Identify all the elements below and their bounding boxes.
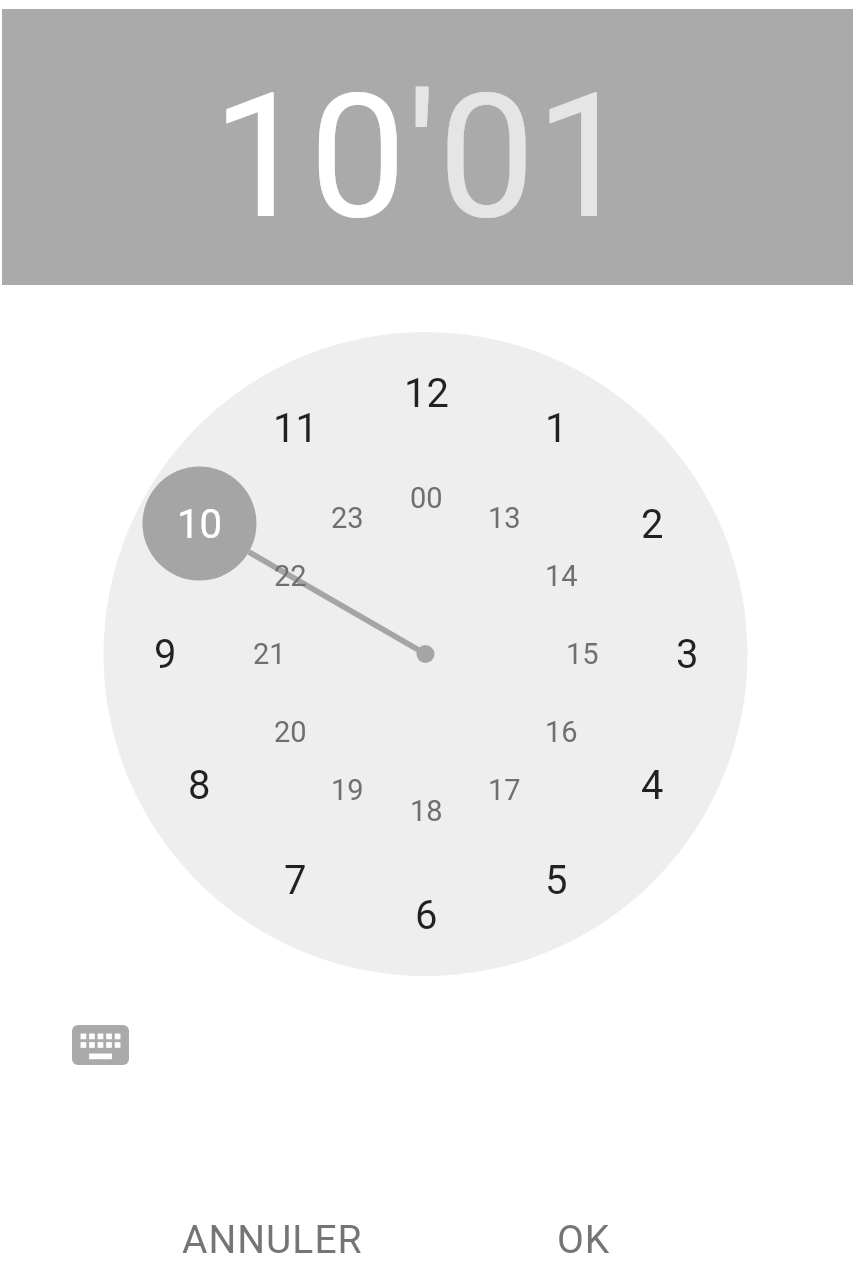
staticText: 15: [566, 637, 599, 671]
staticText: 7: [284, 857, 307, 904]
staticText: 00: [410, 481, 443, 515]
button[interactable]: 3: [642, 609, 732, 699]
button[interactable]: [64, 1017, 137, 1073]
button[interactable]: 12: [381, 348, 471, 438]
button[interactable]: 20: [245, 687, 335, 777]
button[interactable]: 10: [212, 56, 407, 259]
button[interactable]: 4: [607, 740, 697, 830]
button[interactable]: 5: [511, 835, 601, 925]
staticText: 2: [641, 501, 664, 548]
staticText: 9: [154, 631, 177, 678]
button[interactable]: 6: [381, 870, 471, 960]
button[interactable]: 00: [381, 453, 471, 543]
staticText: ': [407, 56, 438, 259]
staticText: 17: [488, 773, 521, 807]
staticText: OK: [557, 1217, 611, 1263]
button[interactable]: 22: [245, 531, 335, 621]
staticText: 14: [545, 559, 578, 593]
button[interactable]: 10: [154, 479, 244, 569]
button[interactable]: 8: [154, 740, 244, 830]
button[interactable]: 18: [381, 766, 471, 856]
staticText: 16: [545, 715, 578, 749]
staticText: 23: [331, 501, 364, 535]
staticText: 19: [331, 773, 364, 807]
staticText: 3: [676, 631, 699, 678]
staticText: 18: [410, 794, 443, 828]
button[interactable]: 01: [438, 56, 633, 259]
staticText: 10: [177, 501, 222, 548]
staticText: 13: [488, 501, 521, 535]
button[interactable]: ANNULER: [162, 1204, 382, 1264]
button[interactable]: 13: [459, 473, 549, 563]
staticText: 4: [641, 762, 664, 809]
button[interactable]: 17: [459, 745, 549, 835]
button[interactable]: 19: [302, 745, 392, 835]
staticText: ANNULER: [182, 1217, 363, 1263]
staticText: 12: [404, 370, 449, 417]
staticText: 22: [274, 559, 307, 593]
staticText: 11: [273, 405, 318, 452]
button[interactable]: 7: [250, 835, 340, 925]
staticText: 8: [188, 762, 211, 809]
button[interactable]: 1: [511, 383, 601, 473]
staticText: 5: [545, 857, 568, 904]
button[interactable]: 16: [516, 687, 606, 777]
button[interactable]: OK: [504, 1204, 664, 1264]
button[interactable]: 11: [250, 383, 340, 473]
staticText: 20: [274, 715, 307, 749]
staticText: 1: [545, 405, 568, 452]
button[interactable]: 9: [120, 609, 210, 699]
button[interactable]: 21: [224, 609, 314, 699]
button[interactable]: 2: [607, 479, 697, 569]
button[interactable]: 23: [302, 473, 392, 563]
button[interactable]: 15: [537, 609, 627, 699]
staticText: 6: [415, 892, 438, 939]
staticText: 21: [253, 637, 286, 671]
button[interactable]: 14: [516, 531, 606, 621]
